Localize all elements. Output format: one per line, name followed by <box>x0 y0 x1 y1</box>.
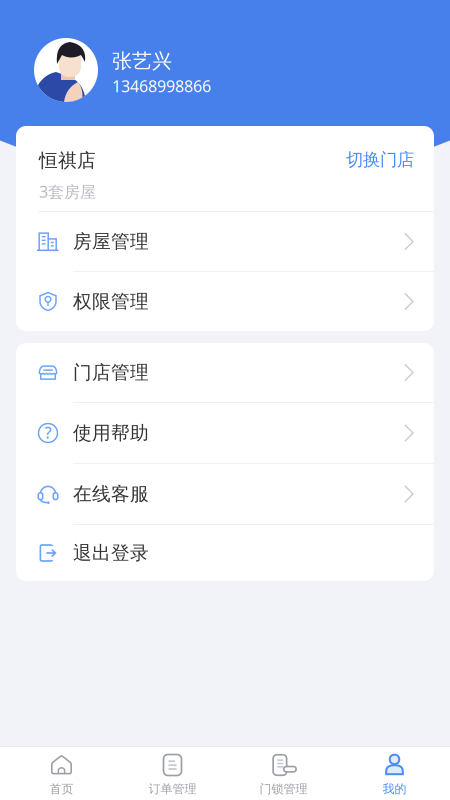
staticText: 在线客服 <box>73 482 149 505</box>
staticText: 门锁管理 <box>259 782 307 796</box>
button[interactable]: 房屋管理 <box>16 212 434 271</box>
staticText: 订单管理 <box>148 782 196 796</box>
staticText: 退出登录 <box>73 541 149 564</box>
staticText: 首页 <box>49 782 73 796</box>
staticText: 3套房屋 <box>39 181 96 202</box>
button[interactable]: 在线客服 <box>16 464 434 524</box>
button[interactable]: ? <box>16 403 434 463</box>
staticText: 门店管理 <box>73 361 149 384</box>
staticText: 使用帮助 <box>73 421 149 444</box>
button[interactable]: 首页 <box>6 746 117 800</box>
button[interactable]: 订单管理 <box>117 746 228 800</box>
staticText: 切换门店 <box>346 149 414 170</box>
button[interactable]: 门店管理 <box>16 343 434 402</box>
staticText: 13468998866 <box>112 75 211 97</box>
button[interactable]: 我的 <box>339 746 450 800</box>
staticText: 我的 <box>382 782 406 796</box>
staticText: 权限管理 <box>73 290 149 313</box>
staticText: ? <box>44 422 51 443</box>
button[interactable]: 切换门店 <box>346 149 414 170</box>
staticText: 恒祺店 <box>39 149 96 172</box>
button[interactable]: 退出登录 <box>16 525 434 581</box>
staticText: 张艺兴 <box>112 49 172 73</box>
staticText: 房屋管理 <box>73 230 149 253</box>
button[interactable]: 门锁管理 <box>228 746 339 800</box>
button[interactable]: 权限管理 <box>16 272 434 331</box>
